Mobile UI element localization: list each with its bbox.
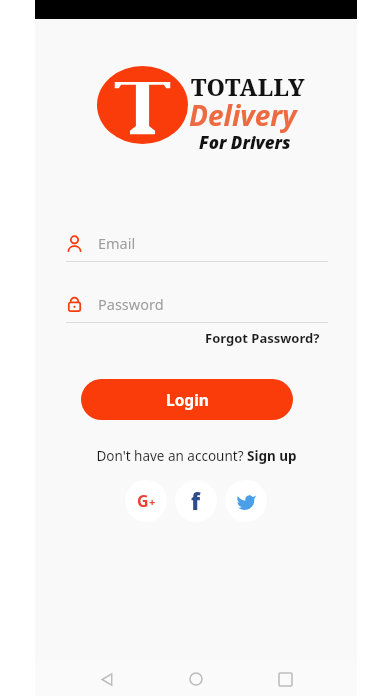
button[interactable]: Login [81, 379, 293, 420]
staticText: Password [98, 294, 164, 314]
button[interactable]: Back [90, 662, 124, 696]
button[interactable]: Don't have an account? Sign up [90, 445, 303, 467]
staticText: TOTALLY [191, 71, 306, 102]
staticText: Forgot Password? [205, 329, 320, 347]
button[interactable]: Password [66, 285, 328, 323]
button[interactable]: Sign in with Facebook [175, 480, 217, 522]
staticText: Delivery [189, 96, 297, 134]
staticText: + [149, 494, 156, 509]
button[interactable]: Sign in with Twitter [225, 480, 267, 522]
button[interactable]: Recent apps [268, 662, 302, 696]
staticText: f [191, 486, 201, 516]
staticText: Login [166, 389, 209, 410]
button[interactable]: Forgot Password? [205, 329, 320, 347]
staticText: For Drivers [199, 131, 291, 154]
button[interactable]: Email [66, 224, 328, 262]
button[interactable]: Home [179, 662, 213, 696]
staticText: G [137, 490, 149, 512]
staticText: Don't have an account? Sign up [96, 447, 297, 465]
staticText: Email [98, 233, 136, 253]
button[interactable]: Sign in with Google [125, 480, 167, 522]
